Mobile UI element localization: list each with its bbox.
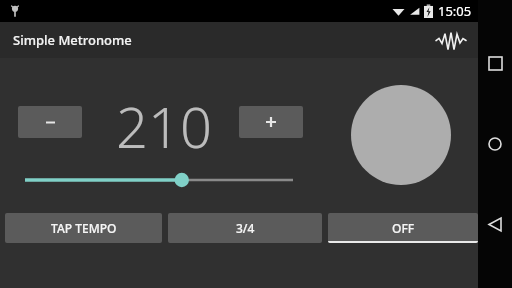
button[interactable]: Home xyxy=(478,129,512,159)
staticText: TAP TEMPO xyxy=(51,220,117,236)
button[interactable]: Increase tempo xyxy=(239,106,303,138)
button[interactable]: TAP TEMPO xyxy=(5,213,162,243)
button[interactable]: Metronome sound waveform xyxy=(434,23,468,57)
button[interactable]: Tempo slider xyxy=(16,166,302,194)
staticText: 3/4 xyxy=(236,220,255,236)
button[interactable]: 3/4 xyxy=(168,213,322,243)
button[interactable]: Back xyxy=(478,209,512,239)
staticText: Simple Metronome xyxy=(13,31,132,49)
button[interactable]: Beat indicator xyxy=(351,85,451,185)
staticText: 15:05 xyxy=(438,2,472,20)
button[interactable]: OFF xyxy=(328,213,478,243)
staticText: OFF xyxy=(392,220,415,236)
button[interactable]: Recent apps xyxy=(478,48,512,78)
button[interactable]: Decrease tempo xyxy=(18,106,82,138)
staticText: 210 xyxy=(116,88,212,156)
